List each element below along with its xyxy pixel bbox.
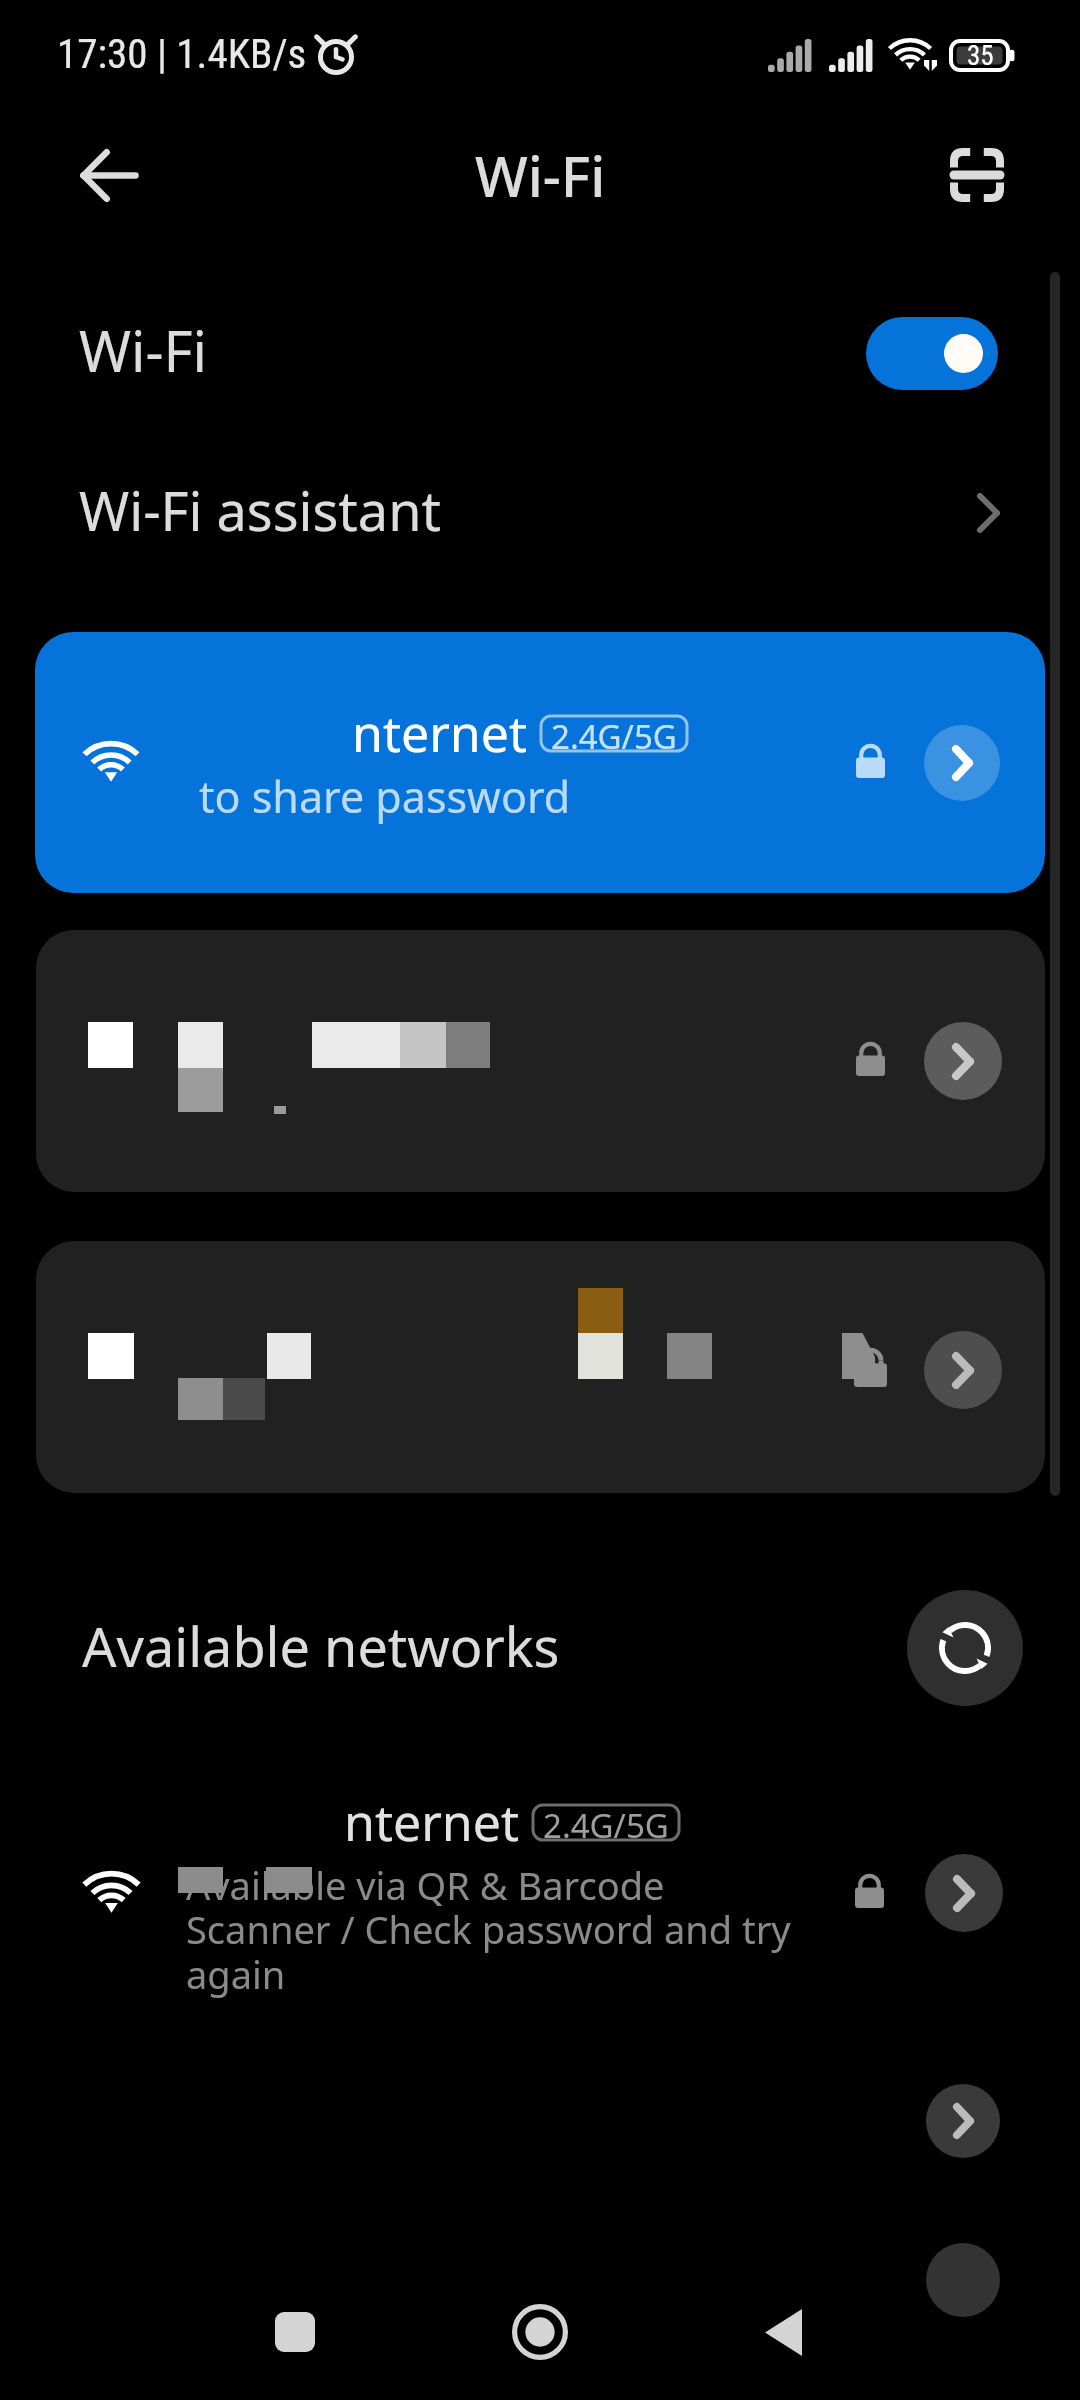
button[interactable]: Network details xyxy=(926,2084,1000,2158)
button[interactable]: Recent apps xyxy=(245,2282,345,2382)
button[interactable]: Network details xyxy=(926,2243,1000,2272)
staticText: Wi-Fi assistant xyxy=(79,473,442,547)
button[interactable]: Network details xyxy=(925,1854,1003,1932)
button[interactable]: Home xyxy=(490,2282,590,2382)
button[interactable]: Refresh xyxy=(907,1590,1023,1706)
staticText: Wi-Fi xyxy=(475,137,606,213)
staticText: 35 xyxy=(967,40,994,69)
button[interactable]: Back xyxy=(733,2282,833,2382)
staticText: nternet xyxy=(344,1788,519,1856)
button[interactable]: nternet xyxy=(35,632,1045,893)
button[interactable]: Network details xyxy=(36,930,1045,1192)
button[interactable]: Wi-Fi on/off xyxy=(866,317,998,390)
button[interactable]: nternet xyxy=(0,1760,1080,2020)
button[interactable]: Scan QR code xyxy=(934,132,1020,218)
button[interactable]: Network details xyxy=(924,1331,1002,1409)
button[interactable]: Network details xyxy=(924,725,1000,801)
staticText: 17:30 | 1.4KB/s xyxy=(57,30,307,78)
button[interactable]: Open Wi-Fi assistant xyxy=(955,473,1023,553)
staticText: Available via QR & Barcode Scanner / Che… xyxy=(186,1859,791,2000)
button[interactable]: Network details xyxy=(36,1241,1045,1493)
staticText: Available networks xyxy=(82,1609,560,1683)
staticText: 2.4G/5G xyxy=(543,1803,669,1838)
staticText: Wi-Fi xyxy=(79,312,208,388)
button[interactable]: Network details xyxy=(924,1022,1002,1100)
button[interactable]: Wi-Fi assistant xyxy=(0,440,1080,590)
staticText: nternet xyxy=(352,699,527,767)
button[interactable]: Wi-Fi xyxy=(0,278,1080,428)
staticText: to share password xyxy=(199,767,571,826)
staticText: 2.4G/5G xyxy=(551,714,677,749)
button[interactable]: Back xyxy=(66,132,152,218)
